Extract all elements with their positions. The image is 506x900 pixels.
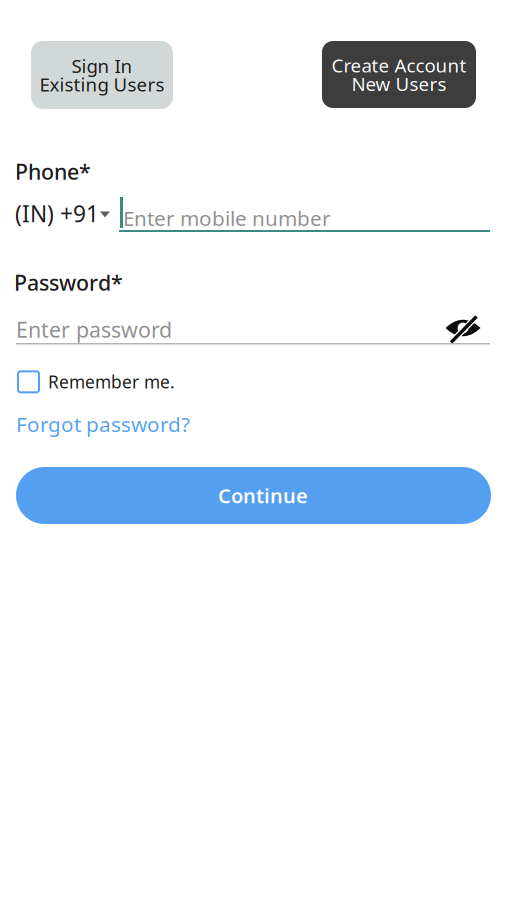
staticText: Enter mobile number <box>123 204 331 232</box>
staticText: (IN) +91 <box>15 198 99 229</box>
button[interactable]: Remember me. <box>18 370 175 394</box>
button[interactable]: (IN) +91 <box>15 198 113 229</box>
staticText: Sign In <box>71 53 132 78</box>
staticText: Continue <box>218 482 308 509</box>
staticText: Phone* <box>15 157 91 186</box>
staticText: New Users <box>351 71 446 96</box>
staticText: Forgot password? <box>16 410 190 438</box>
button[interactable]: Forgot password? <box>16 410 190 438</box>
button[interactable]: Sign In <box>31 41 173 109</box>
staticText: Enter password <box>16 315 172 344</box>
staticText: Remember me. <box>48 370 175 394</box>
button[interactable]: Create Account <box>322 41 476 108</box>
button[interactable]: Show password <box>445 313 482 341</box>
staticText: Password* <box>14 268 123 297</box>
staticText: Create Account <box>331 53 466 78</box>
staticText: Existing Users <box>39 71 164 97</box>
button[interactable]: Continue <box>16 467 491 524</box>
